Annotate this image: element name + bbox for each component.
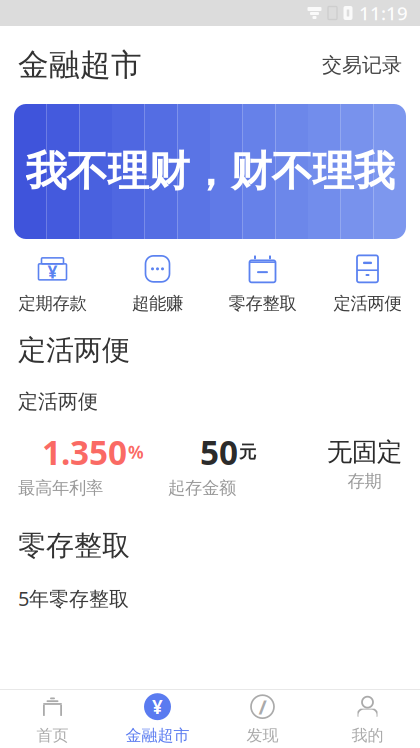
staticText: 最高年利率 <box>18 675 103 696</box>
staticText: 首页 <box>36 726 68 745</box>
staticText: 定活两便 <box>18 389 98 414</box>
staticText: 我不理财，财不理我 <box>25 146 394 197</box>
button[interactable]: 零存整取 <box>0 498 420 625</box>
staticText: 1.350 <box>42 430 127 474</box>
staticText: 定活两便 <box>18 333 130 367</box>
staticText: 金融超市 <box>18 46 142 84</box>
button[interactable]: 我不理财，财不理我 <box>14 104 406 239</box>
staticText: 最高年利率 <box>18 477 103 498</box>
staticText: 11:19 <box>359 1 408 25</box>
button[interactable]: 交易记录 <box>312 43 402 87</box>
button[interactable]: 定活两便 <box>315 251 420 317</box>
button[interactable]: 定活两便 <box>0 317 420 498</box>
button[interactable]: ¥ <box>105 690 210 748</box>
button[interactable]: / <box>210 690 315 748</box>
staticText: ¥ <box>152 694 163 719</box>
staticText: 定活两便 <box>333 293 401 314</box>
staticText: 存期 <box>347 471 381 492</box>
staticText: 交易记录 <box>322 53 402 77</box>
button[interactable]: 零存整取 <box>210 251 315 317</box>
staticText: 元 <box>239 441 256 463</box>
staticText: 起存金额 <box>168 675 236 696</box>
staticText: / <box>258 693 266 720</box>
staticText: ¥ <box>47 260 57 283</box>
button[interactable]: 超能赚 <box>105 251 210 317</box>
staticText: 起存金额 <box>168 477 236 498</box>
button[interactable]: 我的 <box>315 690 420 748</box>
staticText: 发现 <box>246 726 278 745</box>
staticText: 金融超市 <box>125 726 189 745</box>
button[interactable]: ¥ <box>0 251 105 317</box>
staticText: 5年零存整取 <box>18 585 129 611</box>
staticText: 存期 <box>365 669 399 691</box>
staticText: 零存整取 <box>18 528 130 563</box>
staticText: 定期存款 <box>18 293 86 314</box>
staticText: 50 <box>200 430 238 474</box>
button[interactable]: 首页 <box>0 690 105 748</box>
staticText: 零存整取 <box>228 293 296 314</box>
staticText: % <box>128 441 144 464</box>
staticText: 我的 <box>351 726 383 745</box>
staticText: 超能赚 <box>132 293 183 314</box>
staticText: 无固定 <box>327 436 402 468</box>
